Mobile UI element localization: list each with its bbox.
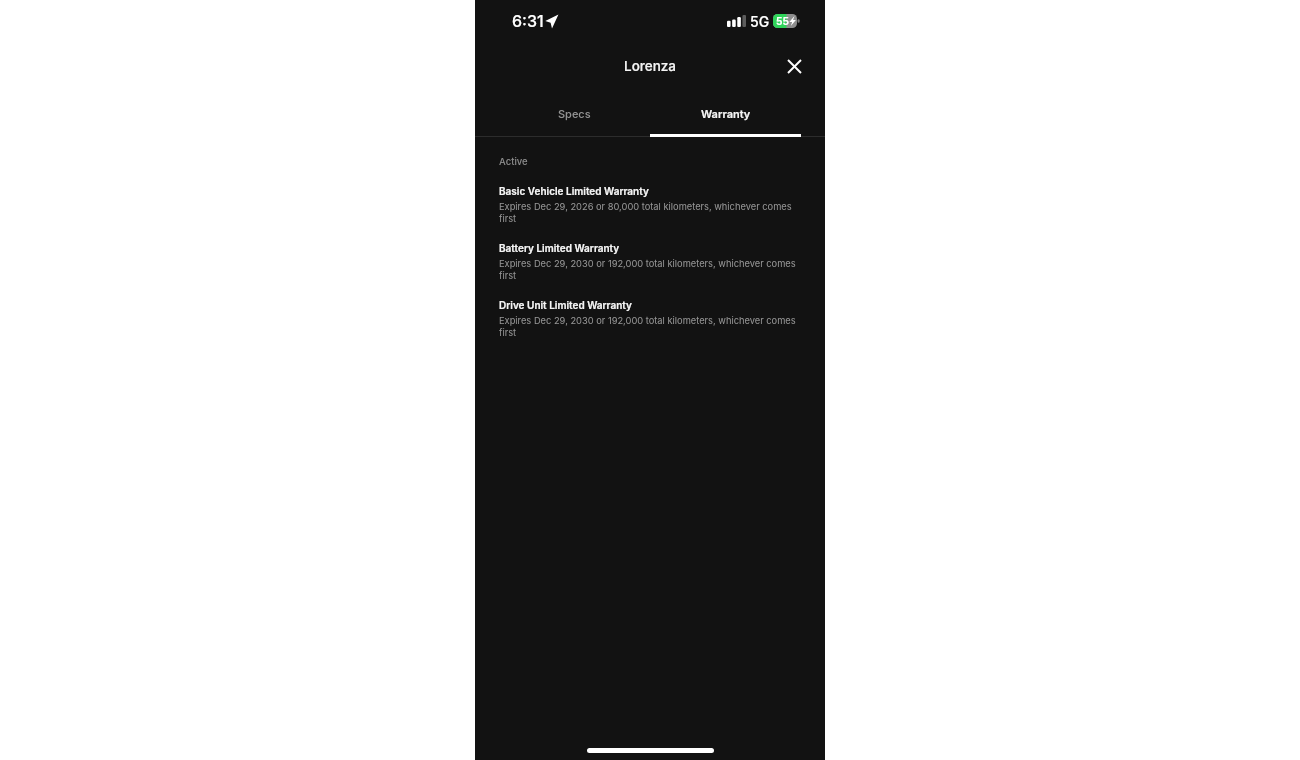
button[interactable]: Specs bbox=[499, 93, 650, 137]
staticText: Expires Dec 29, 2030 or 192,000 total ki… bbox=[499, 314, 801, 338]
staticText: Expires Dec 29, 2030 or 192,000 total ki… bbox=[499, 257, 801, 281]
staticText: 6:31 bbox=[512, 11, 544, 30]
button[interactable]: Battery Limited Warranty bbox=[475, 224, 825, 281]
button[interactable]: Close bbox=[779, 53, 809, 83]
button[interactable]: Warranty bbox=[650, 93, 801, 137]
staticText: Specs bbox=[558, 107, 591, 120]
button[interactable]: Basic Vehicle Limited Warranty bbox=[475, 167, 825, 224]
staticText: Drive Unit Limited Warranty bbox=[499, 299, 632, 311]
button[interactable]: Drive Unit Limited Warranty bbox=[475, 281, 825, 338]
staticText: Warranty bbox=[701, 107, 751, 120]
staticText: Expires Dec 29, 2026 or 80,000 total kil… bbox=[499, 200, 801, 224]
staticText: Active bbox=[499, 156, 528, 167]
staticText: 5G bbox=[750, 13, 770, 30]
staticText: Lorenza bbox=[624, 58, 677, 74]
staticText: Battery Limited Warranty bbox=[499, 242, 620, 254]
staticText: Basic Vehicle Limited Warranty bbox=[499, 185, 649, 197]
staticText: 55 bbox=[776, 15, 789, 27]
